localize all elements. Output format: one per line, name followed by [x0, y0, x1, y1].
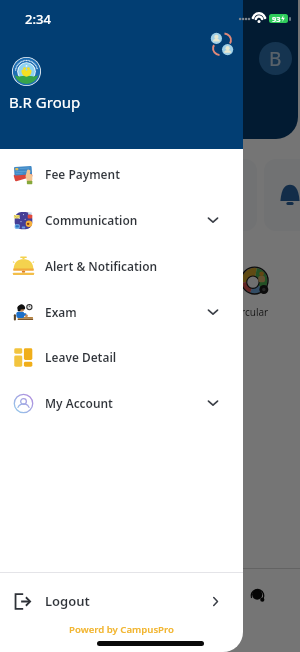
staticText: Powerd by CampusPro — [0, 623, 243, 636]
button[interactable]: Communication — [0, 197, 243, 243]
staticText: My Account — [45, 395, 113, 411]
staticText: rcular — [241, 305, 269, 319]
staticText: Alert & Notification — [45, 258, 158, 274]
staticText: B.R Group — [9, 92, 81, 112]
staticText: 93 — [272, 14, 281, 23]
staticText: 2:34 — [25, 10, 51, 28]
button[interactable]: Leave Detail — [0, 334, 243, 380]
button[interactable]: Alert & Notification — [0, 243, 243, 289]
staticText: Communication — [45, 212, 138, 228]
staticText: Fee Payment — [45, 166, 120, 182]
staticText: Exam — [45, 304, 77, 320]
button[interactable]: Logout — [0, 579, 243, 623]
button[interactable]: Exam — [0, 289, 243, 335]
staticText: B — [269, 46, 282, 72]
staticText: Logout — [45, 592, 90, 610]
staticText: Leave Detail — [45, 349, 117, 365]
button[interactable]: My Account — [0, 380, 243, 426]
button[interactable]: Fee Payment — [0, 151, 243, 197]
